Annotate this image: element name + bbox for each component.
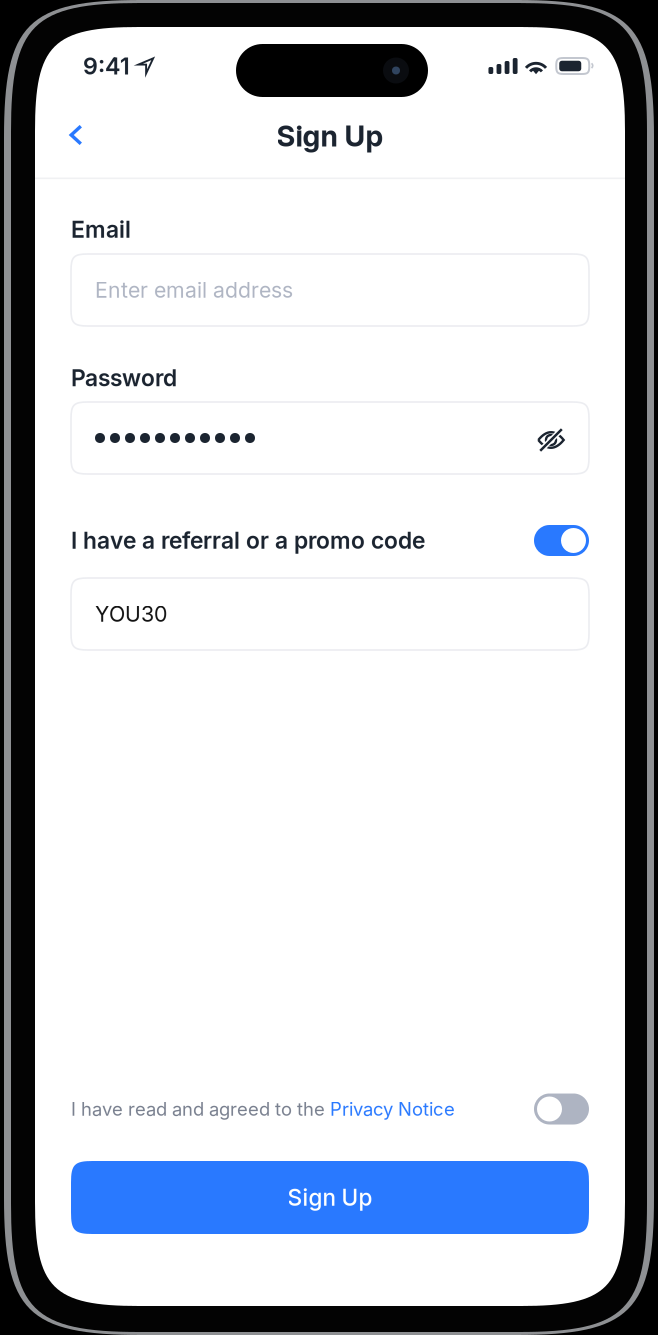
button[interactable]: Sign Up [71,1161,589,1234]
button[interactable]: Agree to the Privacy Notice [534,1093,589,1124]
staticText: Enter email address [95,277,293,303]
staticText: 9:41 [83,52,130,80]
staticText: YOU30 [95,601,167,627]
staticText: I have a referral or a promo code [71,527,425,554]
staticText: Sign Up [287,1184,372,1211]
staticText: Email [71,216,131,243]
button[interactable]: I have read and agreed to the [71,1098,455,1120]
staticText: I have read and agreed to the [71,1098,330,1120]
staticText: Sign Up [276,119,383,153]
button[interactable]: Back [48,107,104,163]
button[interactable]: I have a referral or a promo code [534,525,589,556]
staticText: Privacy Notice [330,1098,455,1120]
staticText: Password [71,364,177,392]
button[interactable]: Show password [533,416,565,460]
